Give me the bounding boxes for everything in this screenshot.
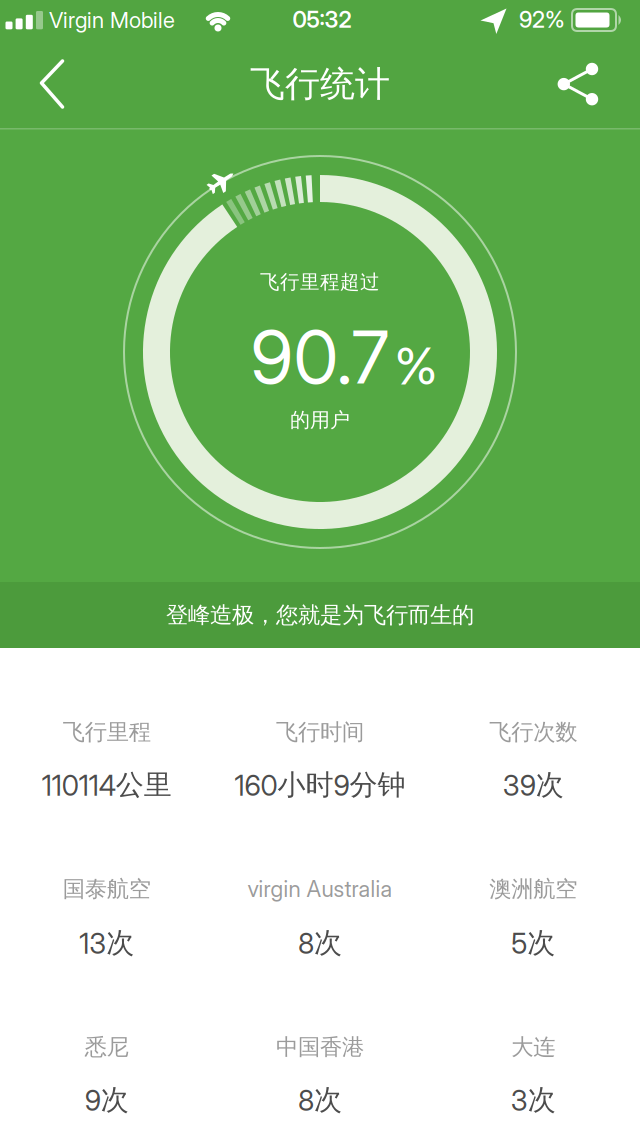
staticText: 飞行里程超过 xyxy=(260,270,380,294)
staticText: 110114公里 xyxy=(42,767,172,803)
staticText: 90.7 xyxy=(250,313,389,401)
staticText: 8次 xyxy=(298,925,342,961)
staticText: 澳洲航空 xyxy=(489,875,577,903)
staticText: 3次 xyxy=(511,1082,556,1118)
button[interactable] xyxy=(548,54,608,114)
staticText: 国泰航空 xyxy=(63,875,151,903)
staticText: 大连 xyxy=(511,1033,555,1061)
staticText: 飞行统计 xyxy=(250,62,390,106)
staticText: virgin Australia xyxy=(247,875,392,902)
staticText: 飞行里程 xyxy=(63,718,151,746)
staticText: 登峰造极，您就是为飞行而生的 xyxy=(166,601,474,629)
staticText: % xyxy=(394,335,437,397)
staticText: 悉尼 xyxy=(85,1033,129,1061)
staticText: 05:32 xyxy=(292,6,351,33)
staticText: 8次 xyxy=(298,1082,342,1118)
staticText: 飞行次数 xyxy=(489,718,577,746)
staticText: 160小时9分钟 xyxy=(234,767,405,803)
staticText: 92% xyxy=(519,6,565,33)
staticText: 39次 xyxy=(503,767,564,803)
button[interactable] xyxy=(20,54,80,114)
staticText: 的用户 xyxy=(290,407,350,433)
staticText: 中国香港 xyxy=(276,1033,364,1061)
staticText: Virgin Mobile xyxy=(49,7,175,33)
staticText: 5次 xyxy=(511,925,555,961)
staticText: 9次 xyxy=(85,1082,129,1118)
staticText: 飞行时间 xyxy=(276,718,364,746)
staticText: 13次 xyxy=(79,925,134,961)
